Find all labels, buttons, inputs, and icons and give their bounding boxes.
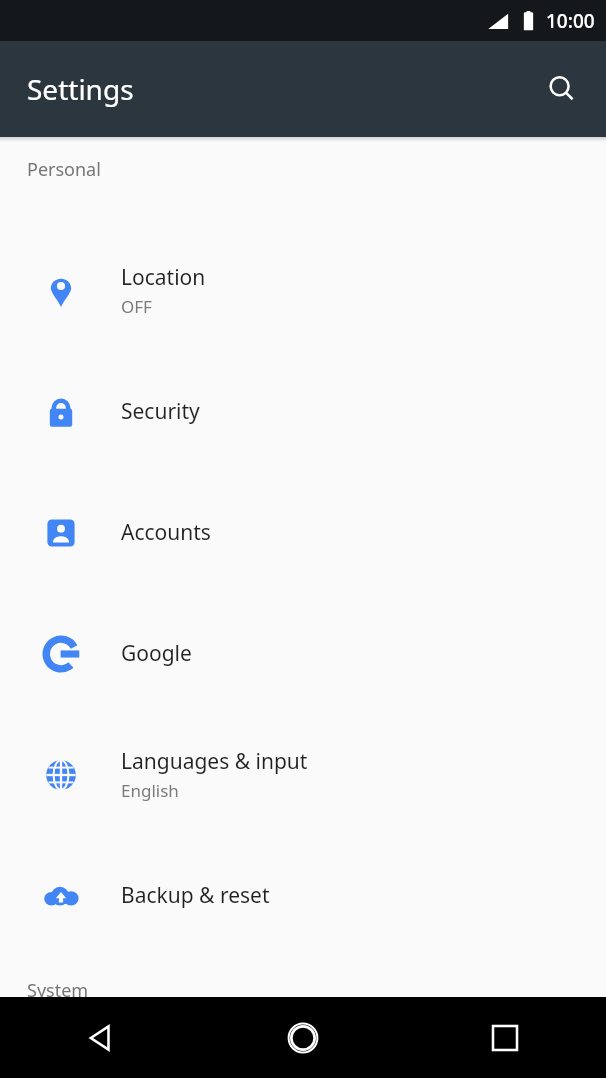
button[interactable]: Home [202, 997, 404, 1078]
staticText: Languages & input [121, 747, 308, 776]
button[interactable]: Search [536, 63, 588, 115]
staticText: Location [121, 263, 206, 292]
staticText: 10:00 [546, 8, 595, 34]
staticText: English [121, 779, 179, 802]
staticText: Backup & reset [121, 881, 270, 910]
staticText: OFF [121, 295, 152, 318]
staticText: System [27, 978, 89, 997]
staticText: Accounts [121, 518, 211, 547]
button[interactable]: Google [0, 593, 606, 714]
staticText: Settings [27, 70, 134, 108]
button[interactable]: Recent apps [404, 997, 606, 1078]
staticText: Security [121, 397, 200, 426]
button[interactable]: Accounts [0, 472, 606, 593]
staticText: Google [121, 639, 192, 668]
button[interactable]: Languages & input [0, 714, 606, 835]
button[interactable]: Backup & reset [0, 835, 606, 956]
staticText: Personal [27, 157, 101, 182]
button[interactable]: Location [0, 230, 606, 351]
button[interactable]: Security [0, 351, 606, 472]
button[interactable]: Back [0, 997, 202, 1078]
